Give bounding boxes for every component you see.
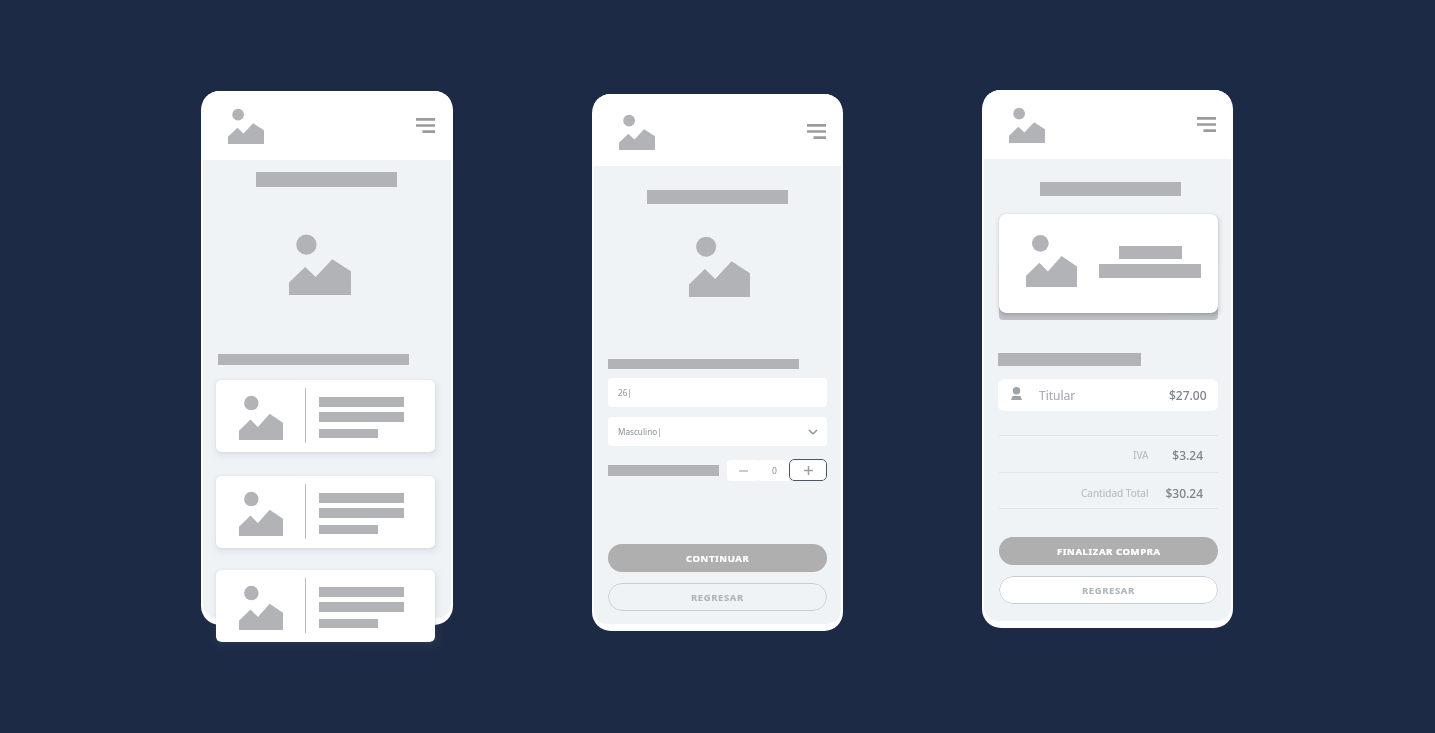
button[interactable] xyxy=(216,476,435,548)
staticText: REGRESAR xyxy=(691,591,744,604)
button[interactable]: 26| xyxy=(608,378,827,407)
button[interactable]: Masculino| xyxy=(608,417,827,446)
staticText: CONTINUAR xyxy=(686,552,750,565)
button[interactable]: Titular xyxy=(998,379,1218,411)
button[interactable]: Open navigation menu xyxy=(1197,117,1216,132)
button[interactable]: REGRESAR xyxy=(608,583,827,611)
staticText: Masculino| xyxy=(618,426,662,437)
button[interactable]: Open navigation menu xyxy=(416,118,435,133)
button[interactable] xyxy=(216,380,435,452)
staticText: IVA xyxy=(1133,448,1149,462)
staticText: Cantidad Total xyxy=(1081,486,1149,500)
button[interactable]: Decrease quantity xyxy=(727,460,759,481)
staticText: $27.00 xyxy=(1169,387,1207,403)
button[interactable]: Increase quantity xyxy=(789,459,827,481)
button[interactable] xyxy=(216,570,435,642)
staticText: FINALIZAR COMPRA xyxy=(1057,545,1161,558)
staticText: $3.24 xyxy=(1172,447,1203,463)
button[interactable]: CONTINUAR xyxy=(608,544,827,572)
staticText: REGRESAR xyxy=(1082,584,1135,597)
button[interactable]: Open navigation menu xyxy=(807,124,826,139)
button[interactable]: FINALIZAR COMPRA xyxy=(999,537,1218,565)
staticText: $30.24 xyxy=(1165,485,1203,501)
staticText: Titular xyxy=(1039,387,1076,403)
button[interactable]: REGRESAR xyxy=(999,576,1218,604)
staticText: 26| xyxy=(618,387,632,398)
button[interactable] xyxy=(999,214,1218,313)
staticText: 0 xyxy=(772,465,777,477)
